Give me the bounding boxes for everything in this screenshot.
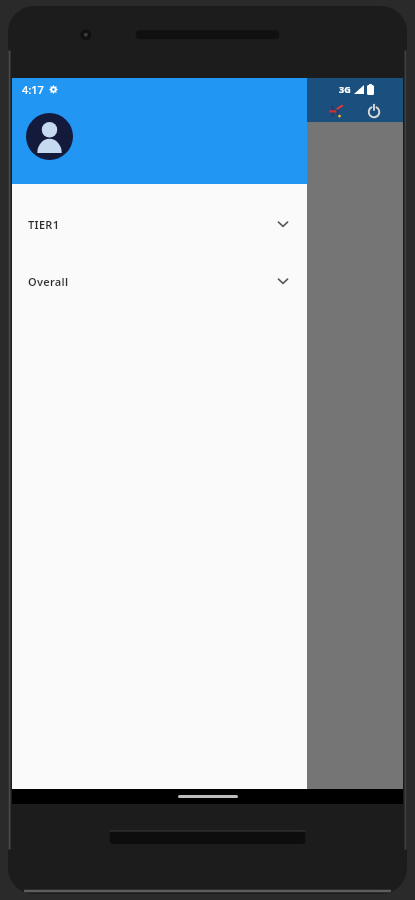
button[interactable]: TIER1 — [12, 210, 307, 238]
staticText: 3G — [339, 83, 351, 95]
staticText: Overall — [28, 274, 69, 289]
button[interactable]: App shortcut — [328, 103, 344, 119]
button[interactable]: Profile — [26, 113, 73, 160]
button[interactable]: Overall — [12, 267, 307, 295]
staticText: TIER1 — [28, 217, 60, 232]
button[interactable]: Home — [178, 795, 238, 798]
button[interactable]: Power — [366, 103, 382, 119]
staticText: 4:17 — [22, 82, 44, 97]
